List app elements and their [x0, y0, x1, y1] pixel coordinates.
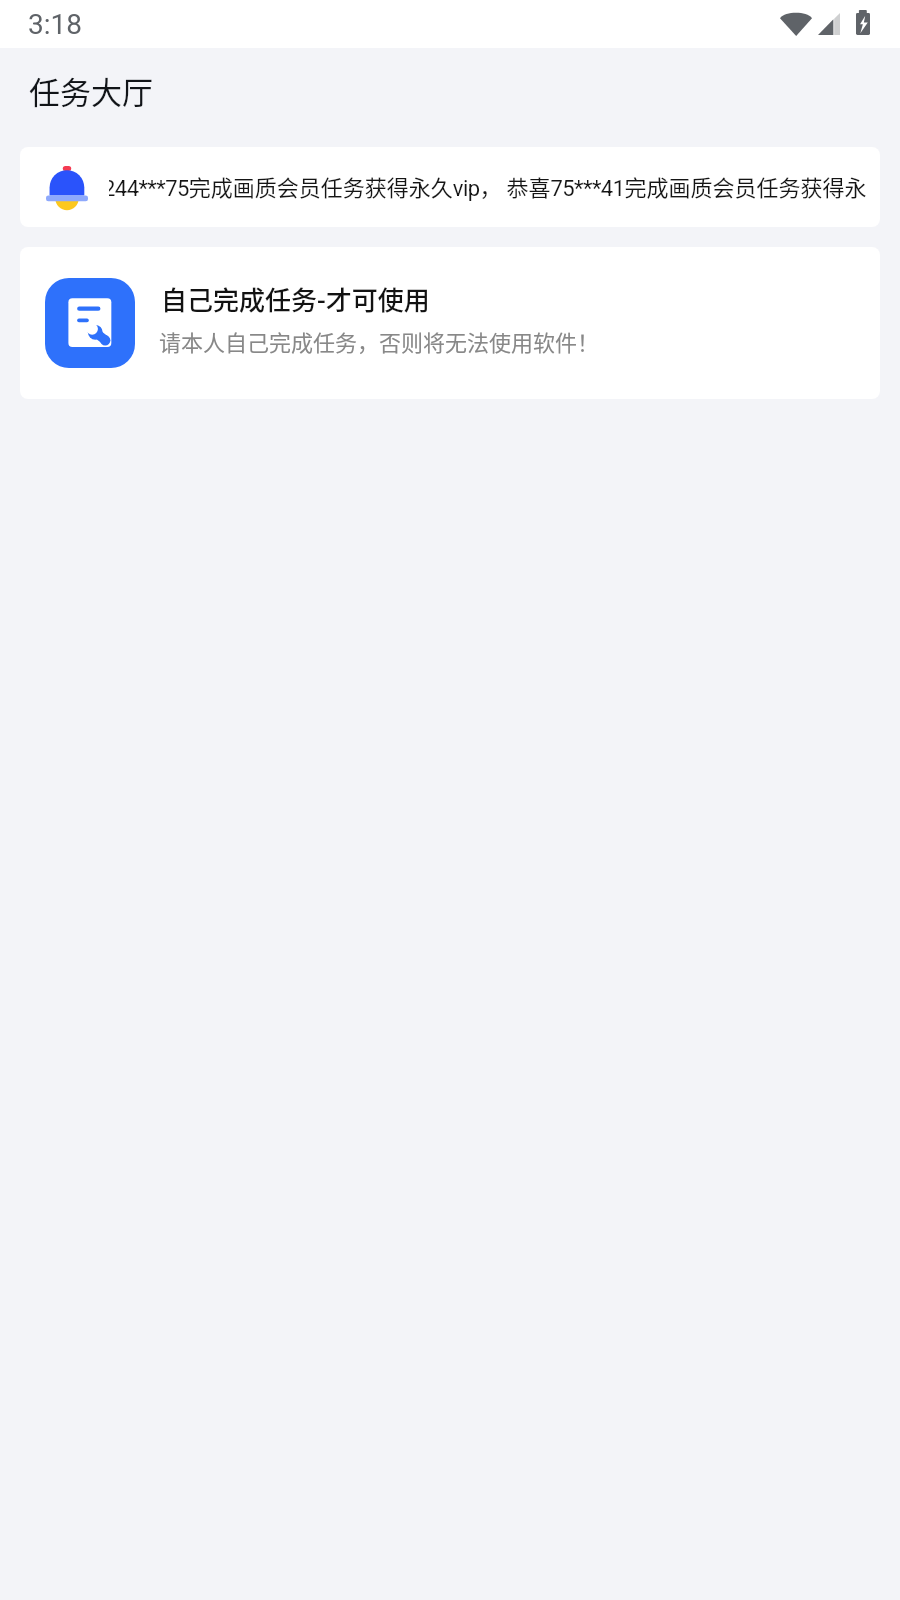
- other: 电量: [856, 10, 870, 35]
- button[interactable]: 自己完成任务-才可使用: [20, 247, 880, 399]
- staticText: 请本人自己完成任务，否则将无法使用软件！: [159, 325, 600, 357]
- other: 信号: [818, 13, 840, 35]
- staticText: 自己完成任务-才可使用: [161, 280, 430, 318]
- staticText: 244***75完成画质会员任务获得永久vip， 恭喜75***41完成画质会员…: [109, 170, 874, 202]
- other: WiFi: [780, 11, 812, 36]
- button[interactable]: 公告: [20, 147, 880, 227]
- staticText: 任务大厅: [29, 68, 153, 113]
- staticText: 3:18: [28, 8, 82, 41]
- other: 公告: [46, 166, 88, 210]
